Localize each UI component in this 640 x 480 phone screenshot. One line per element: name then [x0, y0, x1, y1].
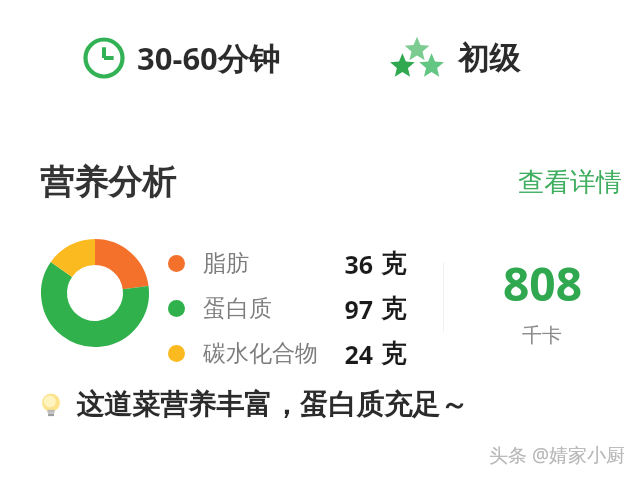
- staticText: 查看详情: [518, 166, 622, 199]
- button[interactable]: Cooking time: [83, 37, 280, 79]
- staticText: 碳水化合物: [203, 339, 318, 368]
- other: Cooking time: [83, 37, 125, 79]
- staticText: 克: [381, 293, 406, 324]
- button[interactable]: 蛋白质: [168, 291, 406, 326]
- staticText: 36: [325, 247, 373, 281]
- staticText: 脂肪: [203, 249, 249, 278]
- staticText: 这道菜营养丰富，蛋白质充足～: [76, 387, 468, 422]
- staticText: 营养分析: [40, 161, 176, 204]
- button[interactable]: Tip: [36, 387, 468, 422]
- staticText: 24: [325, 337, 373, 371]
- staticText: 克: [381, 248, 406, 279]
- staticText: 97: [325, 292, 373, 326]
- button[interactable]: Difficulty level: [390, 35, 520, 81]
- button[interactable]: 查看详情: [512, 162, 628, 203]
- staticText: 初级: [458, 39, 520, 78]
- staticText: 蛋白质: [203, 294, 272, 323]
- staticText: 808: [503, 252, 582, 315]
- other: Tip: [36, 390, 66, 420]
- staticText: 30-60分钟: [137, 37, 280, 79]
- other: Difficulty level: [390, 35, 444, 81]
- staticText: 千卡: [522, 323, 562, 348]
- staticText: 克: [381, 338, 406, 369]
- button[interactable]: 脂肪: [168, 246, 406, 281]
- staticText: 头条 @婧家小厨: [489, 442, 626, 468]
- button[interactable]: 碳水化合物: [168, 336, 406, 371]
